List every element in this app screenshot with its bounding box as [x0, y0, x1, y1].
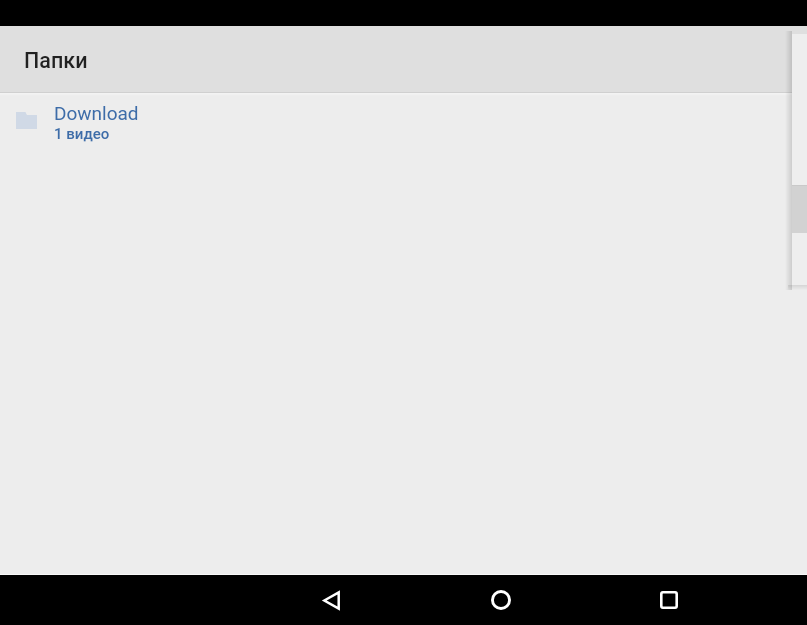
staticText: Download — [54, 102, 139, 124]
button[interactable]: Back — [303, 575, 360, 625]
button[interactable]: Download — [0, 97, 807, 147]
button[interactable] — [792, 34, 807, 285]
button[interactable]: Home — [472, 575, 529, 625]
staticText: Папки — [24, 48, 88, 73]
button[interactable]: Recent apps — [640, 575, 697, 625]
staticText: 1 видео — [54, 125, 110, 143]
